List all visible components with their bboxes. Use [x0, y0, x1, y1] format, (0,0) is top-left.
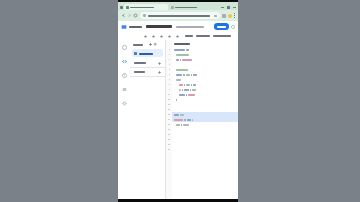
button[interactable]: Save: [159, 34, 164, 39]
button[interactable]: [169, 4, 211, 10]
button[interactable]: Undo: [143, 34, 148, 39]
button[interactable]: [214, 23, 229, 30]
button[interactable]: Executions: [120, 85, 129, 94]
button[interactable]: Search: [154, 43, 157, 46]
button[interactable]: Add file: [149, 43, 152, 46]
button[interactable]: [124, 4, 168, 10]
button[interactable]: Apps Script: [121, 24, 127, 30]
button[interactable]: More: [234, 13, 235, 18]
button[interactable]: Reload: [133, 13, 138, 18]
button[interactable]: Run: [167, 34, 172, 39]
button[interactable]: Triggers: [120, 71, 129, 80]
button[interactable]: [130, 59, 165, 67]
button[interactable]: Back: [121, 13, 126, 18]
button[interactable]: [130, 68, 165, 76]
button[interactable]: Settings: [120, 99, 129, 108]
button[interactable]: Editor: [120, 57, 129, 66]
button[interactable]: Overview: [120, 43, 129, 52]
button[interactable]: [140, 12, 220, 19]
button[interactable]: Profile: [228, 14, 232, 18]
button[interactable]: Extensions: [222, 14, 226, 18]
button[interactable]: Redo: [151, 34, 156, 39]
button[interactable]: Forward: [127, 13, 132, 18]
button[interactable]: Help: [231, 25, 235, 29]
button[interactable]: Debug: [175, 34, 180, 39]
button[interactable]: [132, 49, 163, 57]
